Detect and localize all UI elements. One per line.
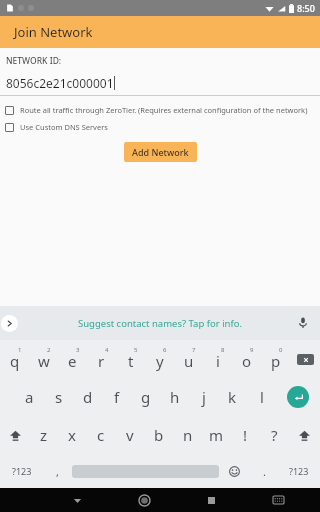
staticText: l (260, 387, 264, 407)
button[interactable]: Shift (289, 416, 320, 454)
staticText: v (126, 425, 134, 445)
staticText: j (202, 387, 206, 407)
button[interactable]: 5 (116, 340, 145, 378)
staticText: Use Custom DNS Servers (20, 122, 108, 132)
button[interactable]: Backspace (290, 340, 320, 378)
button[interactable]: 8056c2e21c000001 (0, 75, 320, 96)
button[interactable]: Period (250, 454, 278, 488)
button[interactable]: z (30, 416, 58, 454)
button[interactable]: 1 (0, 340, 29, 378)
staticText: h (170, 387, 180, 407)
staticText: NETWORK ID: (6, 55, 62, 67)
staticText: 1 (18, 346, 22, 354)
staticText: 9 (250, 346, 254, 354)
button[interactable]: Comma (43, 454, 72, 488)
button[interactable]: g (131, 378, 160, 416)
button[interactable]: Suggest contact names? Tap for info. (78, 317, 243, 330)
button[interactable]: m (202, 416, 231, 454)
staticText: q (10, 351, 20, 371)
button[interactable]: f (102, 378, 131, 416)
staticText: ?123 (12, 465, 32, 477)
staticText: e (68, 351, 77, 371)
staticText: n (183, 425, 193, 445)
button[interactable]: b (144, 416, 173, 454)
button[interactable]: Enter (276, 378, 320, 416)
staticText: d (83, 387, 93, 407)
button[interactable]: Join Network (0, 16, 320, 48)
staticText: c (97, 425, 105, 445)
staticText: 0 (279, 346, 283, 354)
button[interactable]: Route all traffic through ZeroTier. (Req… (0, 103, 320, 117)
button[interactable]: l (247, 378, 276, 416)
staticText: y (156, 351, 164, 371)
staticText: m (209, 425, 224, 445)
staticText: , (56, 464, 59, 479)
staticText: i (216, 351, 220, 371)
staticText: f (114, 387, 120, 407)
button[interactable]: x (58, 416, 86, 454)
staticText: o (242, 351, 252, 371)
staticText: ! (243, 425, 248, 445)
staticText: r (98, 351, 105, 371)
staticText: 8056c2e21c000001 (6, 75, 114, 91)
button[interactable]: Space (72, 463, 219, 479)
button[interactable]: Add Network (124, 142, 197, 162)
staticText: ?123 (289, 465, 309, 477)
staticText: b (154, 425, 164, 445)
button[interactable]: Home (123, 488, 165, 512)
staticText: 8:50 (297, 2, 315, 14)
button[interactable]: Use Custom DNS Servers (0, 120, 320, 134)
button[interactable]: a (15, 378, 44, 416)
button[interactable]: Back (57, 488, 98, 512)
staticText: a (25, 387, 34, 407)
button[interactable]: ! (231, 416, 260, 454)
staticText: 3 (76, 346, 80, 354)
staticText: ? (271, 425, 278, 445)
button[interactable]: k (218, 378, 247, 416)
staticText: 8 (221, 346, 225, 354)
button[interactable]: 3 (58, 340, 87, 378)
button[interactable]: 7 (174, 340, 203, 378)
button[interactable]: 4 (87, 340, 116, 378)
staticText: z (40, 425, 48, 445)
staticText: 7 (192, 346, 196, 354)
staticText: 5 (134, 346, 138, 354)
button[interactable]: Shift (0, 416, 30, 454)
button[interactable]: 9 (232, 340, 261, 378)
staticText: Route all traffic through ZeroTier. (Req… (20, 105, 308, 115)
staticText: p (271, 351, 281, 371)
staticText: . (263, 464, 266, 479)
staticText: t (128, 351, 134, 371)
staticText: w (38, 351, 50, 371)
staticText: Add Network (132, 146, 189, 158)
button[interactable]: Recents (190, 488, 232, 512)
button[interactable]: 2 (29, 340, 58, 378)
button[interactable]: Expand suggestions (1, 315, 18, 332)
staticText: u (184, 351, 194, 371)
button[interactable]: c (86, 416, 115, 454)
button[interactable]: 8 (203, 340, 232, 378)
staticText: k (228, 387, 237, 407)
button[interactable]: n (173, 416, 202, 454)
button[interactable]: Emoji (219, 454, 250, 488)
button[interactable]: Switch keyboard (257, 488, 299, 512)
button[interactable]: s (44, 378, 73, 416)
staticText: s (55, 387, 63, 407)
staticText: Join Network (14, 23, 93, 41)
staticText: 2 (47, 346, 51, 354)
button[interactable]: 0 (261, 340, 290, 378)
button[interactable]: ?123 (278, 454, 320, 488)
staticText: g (141, 387, 151, 407)
staticText: Suggest contact names? Tap for info. (78, 317, 243, 330)
button[interactable]: Voice input (294, 314, 312, 332)
staticText: 4 (105, 346, 109, 354)
button[interactable]: ? (260, 416, 289, 454)
button[interactable]: h (160, 378, 189, 416)
staticText: 6 (163, 346, 167, 354)
button[interactable]: d (73, 378, 102, 416)
staticText: x (68, 425, 76, 445)
button[interactable]: j (189, 378, 218, 416)
button[interactable]: ?123 (0, 454, 43, 488)
button[interactable]: 6 (145, 340, 174, 378)
button[interactable]: v (115, 416, 144, 454)
